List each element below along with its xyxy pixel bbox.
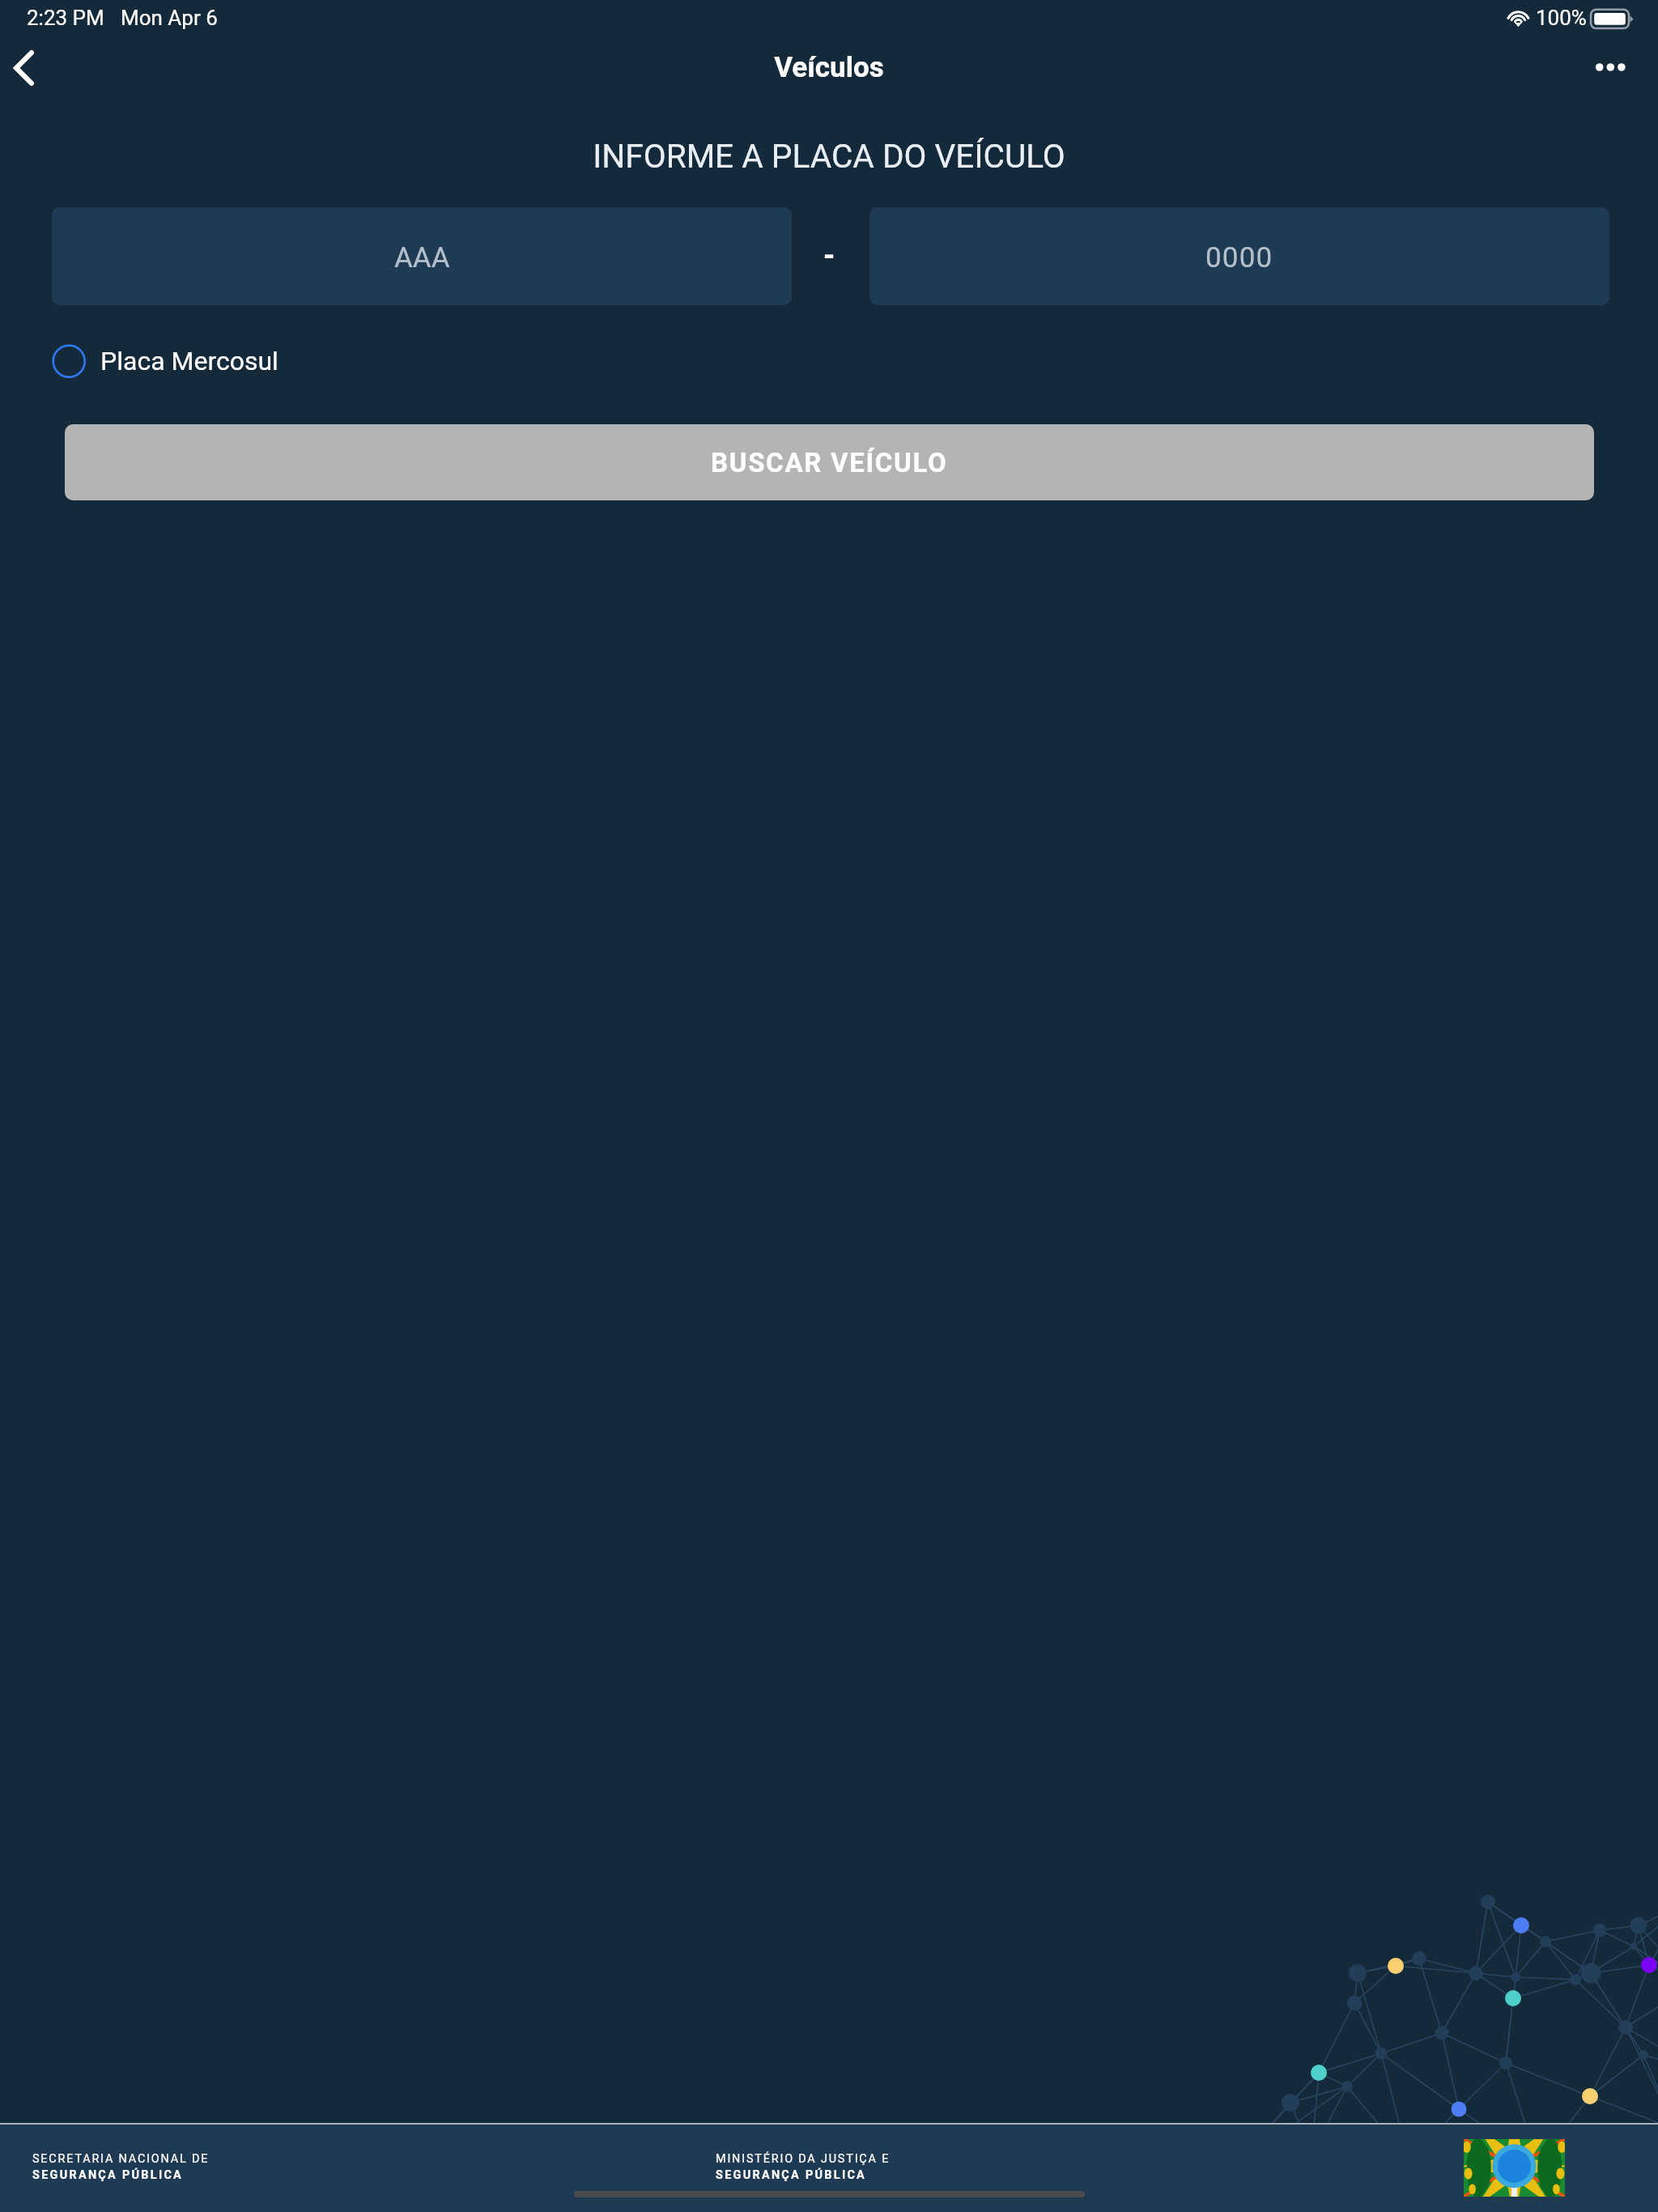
staticText: SEGURANÇA PÚBLICA xyxy=(716,2168,867,2182)
staticText: Placa Mercosul xyxy=(100,346,278,376)
button[interactable]: AAA xyxy=(52,207,792,305)
button[interactable]: Voltar xyxy=(0,31,74,105)
button[interactable]: BUSCAR VEÍCULO xyxy=(65,424,1594,500)
staticText: 0000 xyxy=(1205,241,1273,274)
button[interactable]: Placa Mercosul xyxy=(42,335,301,387)
staticText: BUSCAR VEÍCULO xyxy=(711,447,948,479)
staticText: Mon Apr 6 xyxy=(121,6,218,30)
staticText: 2:23 PM xyxy=(27,6,104,30)
button[interactable]: 0000 xyxy=(869,207,1609,305)
staticText: Veículos xyxy=(774,51,884,84)
button[interactable]: Mais opções xyxy=(1573,31,1647,105)
staticText: AAA xyxy=(394,241,450,274)
staticText: INFORME A PLACA DO VEÍCULO xyxy=(593,137,1065,176)
staticText: 100% xyxy=(1536,6,1587,30)
staticText: MINISTÉRIO DA JUSTIÇA E xyxy=(716,2152,891,2166)
staticText: SECRETARIA NACIONAL DE xyxy=(32,2152,210,2166)
staticText: SEGURANÇA PÚBLICA xyxy=(32,2168,184,2182)
